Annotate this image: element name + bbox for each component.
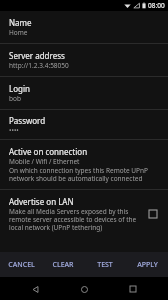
button[interactable]: Advertise on LAN checkbox (146, 207, 160, 221)
button[interactable]: Active on connection (0, 140, 168, 189)
staticText: 08:00 (148, 1, 165, 10)
button[interactable]: Server address (0, 44, 168, 76)
button[interactable]: Password (0, 110, 168, 139)
button[interactable]: Advertise on LAN (0, 190, 168, 238)
staticText: APPLY (137, 260, 158, 270)
staticText: Name (9, 17, 32, 28)
button[interactable]: Back (26, 280, 44, 298)
button[interactable]: Login (0, 77, 168, 109)
button[interactable]: Name (0, 14, 168, 43)
button[interactable]: APPLY (126, 252, 168, 277)
button[interactable]: Home (75, 280, 93, 298)
staticText: Mobile / Wifi / Ethernet (9, 157, 80, 166)
button[interactable]: CLEAR (42, 252, 84, 277)
staticText: http://1.2.3.4:58050 (9, 61, 69, 70)
staticText: On which connection types this Remote UP… (9, 166, 160, 183)
button[interactable]: Recent apps (124, 280, 142, 298)
staticText: Advertise on LAN (9, 196, 74, 207)
staticText: Login (9, 83, 30, 94)
button[interactable]: CANCEL (0, 252, 42, 277)
staticText: •••• (9, 126, 19, 135)
button[interactable]: TEST (84, 252, 126, 277)
staticText: Active on connection (9, 146, 88, 157)
staticText: Password (9, 115, 46, 126)
staticText: TEST (97, 260, 113, 270)
staticText: Make all Media Servers exposed by this r… (9, 207, 140, 232)
staticText: Server address (9, 50, 65, 61)
staticText: bob (9, 94, 21, 103)
staticText: CANCEL (8, 260, 35, 270)
staticText: Home (9, 28, 28, 37)
staticText: CLEAR (52, 260, 74, 270)
